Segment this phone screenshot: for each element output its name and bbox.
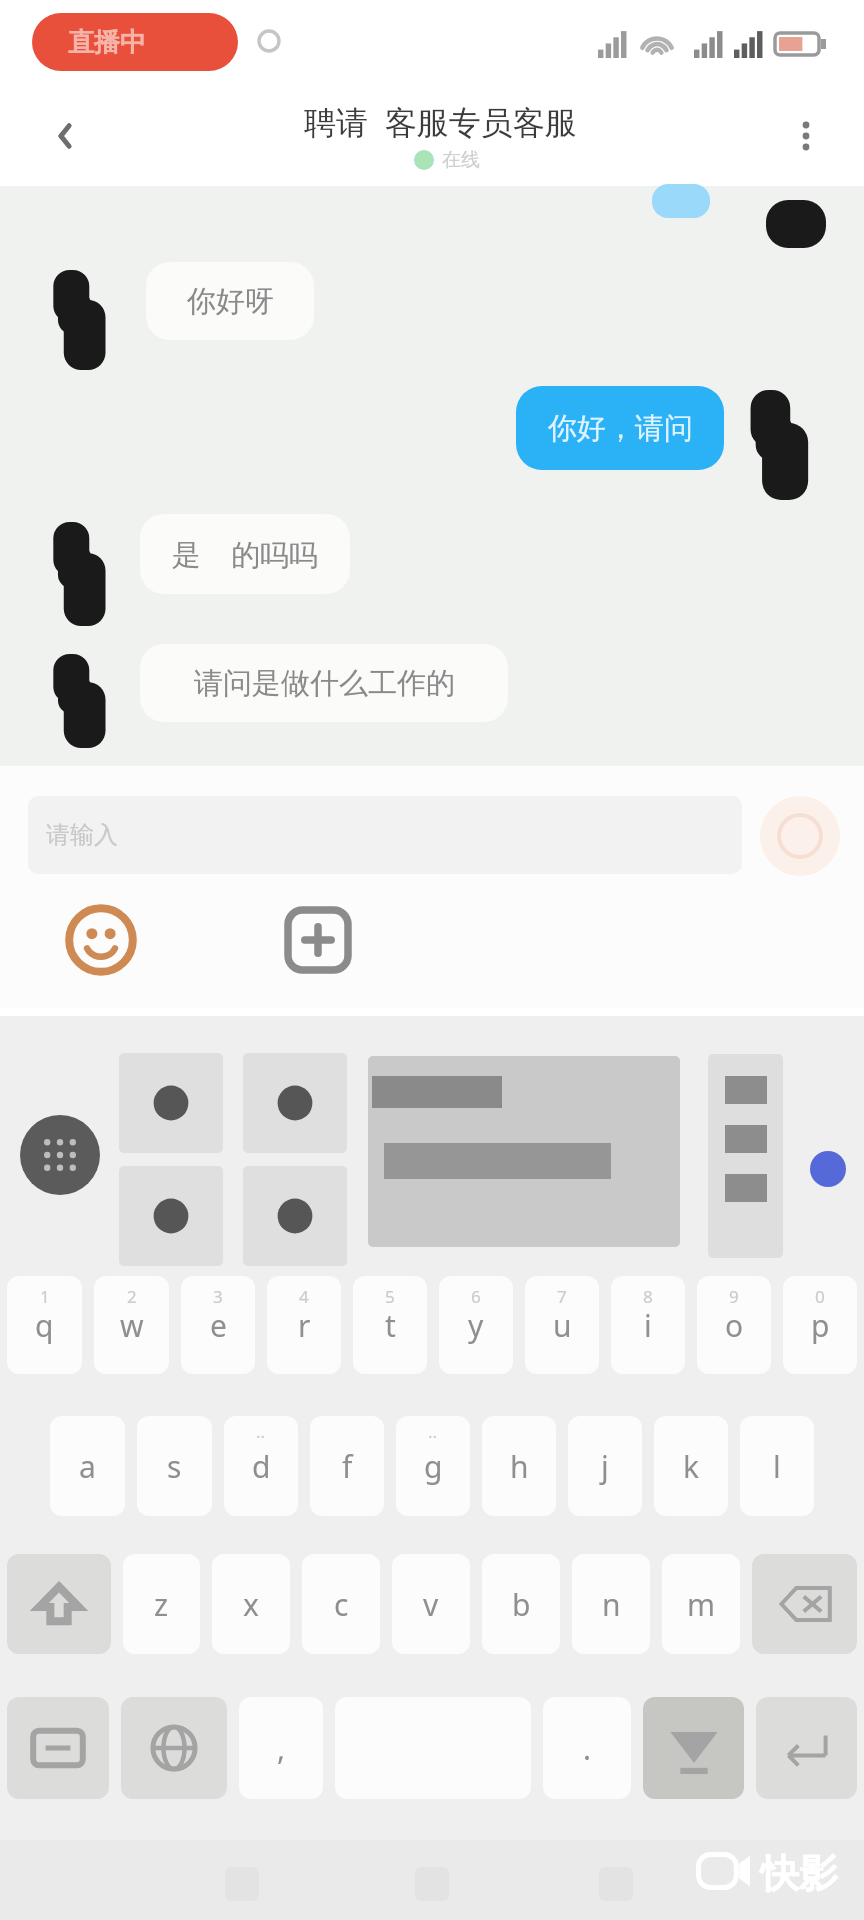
- staticText: 0: [815, 1285, 825, 1308]
- button[interactable]: f: [310, 1416, 384, 1516]
- staticText: j: [601, 1446, 609, 1487]
- staticText: k: [683, 1446, 700, 1487]
- staticText: 5: [385, 1285, 395, 1308]
- button[interactable]: l: [740, 1416, 814, 1516]
- button[interactable]: ··: [224, 1416, 298, 1516]
- staticText: h: [510, 1446, 529, 1487]
- button[interactable]: s: [137, 1416, 212, 1516]
- button[interactable]: 你好呀: [146, 262, 314, 340]
- button[interactable]: m: [662, 1554, 740, 1654]
- staticText: f: [342, 1446, 353, 1487]
- button[interactable]: 请输入: [28, 796, 742, 874]
- button[interactable]: c: [302, 1554, 380, 1654]
- button[interactable]: a: [50, 1416, 125, 1516]
- staticText: 4: [299, 1285, 309, 1308]
- button[interactable]: n: [572, 1554, 650, 1654]
- button[interactable]: Add attachment: [276, 898, 360, 982]
- button[interactable]: Switch language: [121, 1697, 227, 1799]
- button[interactable]: Back: [592, 1860, 640, 1908]
- button[interactable]: Avatar: [51, 522, 109, 626]
- button[interactable]: [243, 1166, 347, 1266]
- staticText: v: [423, 1584, 439, 1625]
- staticText: 是 的吗吗: [172, 534, 319, 574]
- button[interactable]: b: [482, 1554, 560, 1654]
- button[interactable]: [368, 1056, 680, 1247]
- staticText: d: [252, 1446, 271, 1487]
- staticText: 1: [40, 1285, 50, 1308]
- staticText: 你好呀: [187, 283, 274, 320]
- button[interactable]: Emoji: [59, 898, 143, 982]
- staticText: i: [644, 1305, 652, 1346]
- button[interactable]: Voice input: [810, 1151, 846, 1187]
- staticText: z: [154, 1584, 169, 1625]
- staticText: 请输入: [46, 820, 118, 850]
- button[interactable]: Avatar: [748, 390, 812, 500]
- button[interactable]: Shift: [7, 1554, 111, 1654]
- button[interactable]: ,: [239, 1697, 323, 1799]
- staticText: o: [725, 1305, 744, 1346]
- staticText: w: [120, 1305, 144, 1346]
- button[interactable]: z: [123, 1554, 200, 1654]
- button[interactable]: Avatar: [766, 200, 826, 248]
- button[interactable]: 9: [697, 1276, 771, 1374]
- staticText: y: [468, 1305, 484, 1346]
- button[interactable]: Recents: [218, 1860, 266, 1908]
- button[interactable]: Home: [408, 1860, 456, 1908]
- staticText: q: [35, 1305, 54, 1346]
- button[interactable]: Keyboard menu: [18, 1113, 102, 1197]
- button[interactable]: 7: [525, 1276, 599, 1374]
- button[interactable]: [119, 1166, 223, 1266]
- button[interactable]: Expand suggestions: [708, 1054, 783, 1258]
- staticText: m: [687, 1584, 716, 1625]
- button[interactable]: v: [392, 1554, 470, 1654]
- staticText: e: [210, 1305, 227, 1346]
- button[interactable]: h: [482, 1416, 556, 1516]
- staticText: ··: [256, 1425, 266, 1448]
- button[interactable]: More options: [778, 108, 834, 164]
- staticText: .: [583, 1728, 592, 1769]
- button[interactable]: Avatar: [51, 654, 109, 748]
- button[interactable]: Symbols: [7, 1697, 109, 1799]
- button[interactable]: Backspace: [752, 1554, 857, 1654]
- button[interactable]: Emoji: [643, 1697, 744, 1799]
- staticText: 请问是做什么工作的: [194, 665, 455, 702]
- staticText: 9: [729, 1285, 739, 1308]
- staticText: b: [512, 1584, 531, 1625]
- staticText: 聘请 客服专员客服: [304, 100, 577, 144]
- button[interactable]: k: [654, 1416, 728, 1516]
- button[interactable]: Back: [36, 108, 92, 164]
- button[interactable]: x: [212, 1554, 290, 1654]
- button[interactable]: [119, 1053, 223, 1153]
- button[interactable]: 请问是做什么工作的: [140, 644, 508, 722]
- staticText: ,: [277, 1728, 286, 1769]
- button[interactable]: Enter: [756, 1697, 857, 1799]
- staticText: 3: [213, 1285, 223, 1308]
- staticText: l: [773, 1446, 781, 1487]
- button[interactable]: j: [568, 1416, 642, 1516]
- button[interactable]: 5: [353, 1276, 427, 1374]
- button[interactable]: 是 的吗吗: [140, 514, 350, 594]
- button[interactable]: [243, 1053, 347, 1153]
- staticText: 6: [471, 1285, 481, 1308]
- staticText: 快影: [760, 1849, 838, 1898]
- button[interactable]: 8: [611, 1276, 685, 1374]
- staticText: n: [602, 1584, 621, 1625]
- staticText: t: [385, 1305, 396, 1346]
- button[interactable]: 1: [7, 1276, 82, 1374]
- staticText: s: [167, 1446, 182, 1487]
- button[interactable]: 6: [439, 1276, 513, 1374]
- button[interactable]: 4: [267, 1276, 341, 1374]
- button[interactable]: ··: [396, 1416, 470, 1516]
- button[interactable]: Avatar: [51, 270, 109, 370]
- button[interactable]: 3: [181, 1276, 255, 1374]
- button[interactable]: Send: [760, 796, 840, 876]
- button[interactable]: .: [543, 1697, 631, 1799]
- button[interactable]: 直播中: [32, 13, 238, 71]
- button[interactable]: 2: [94, 1276, 169, 1374]
- staticText: u: [553, 1305, 572, 1346]
- staticText: 直播中: [68, 26, 146, 59]
- button[interactable]: 0: [783, 1276, 857, 1374]
- staticText: x: [243, 1584, 259, 1625]
- button[interactable]: 你好，请问: [516, 386, 724, 470]
